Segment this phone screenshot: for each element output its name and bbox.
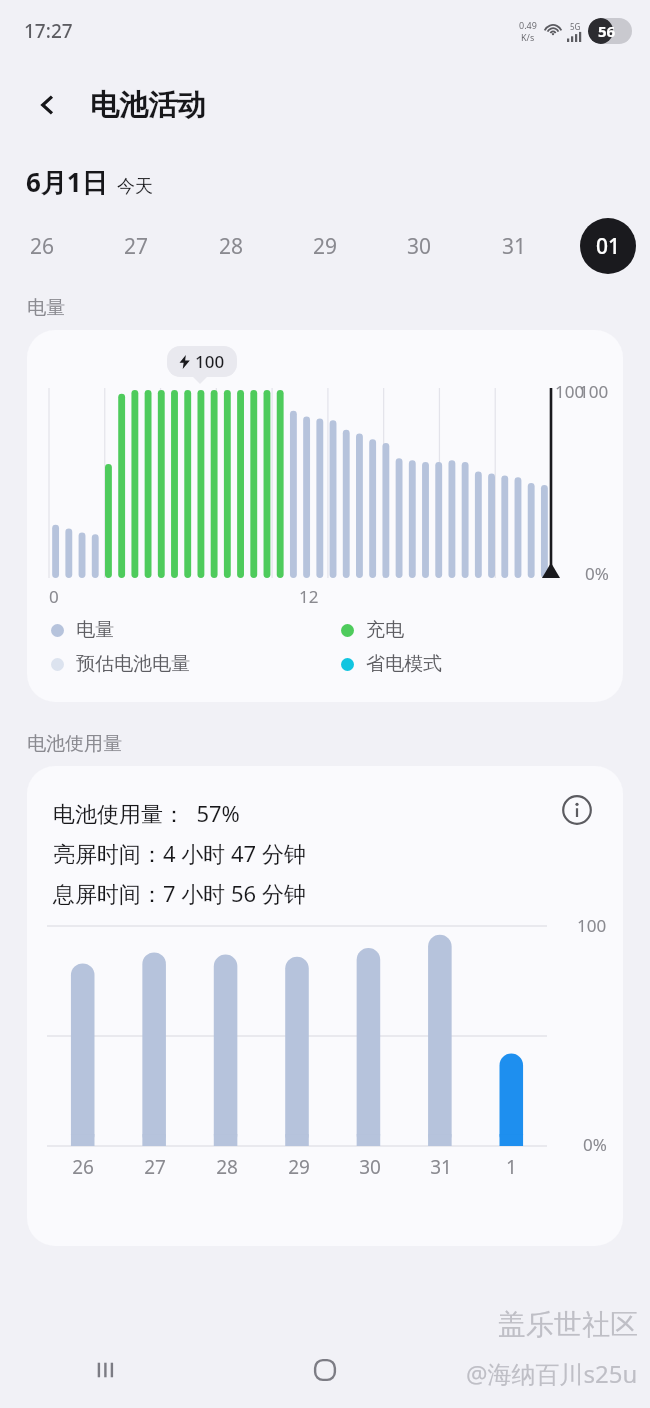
staticText: 100 xyxy=(195,350,225,373)
button[interactable]: 26 xyxy=(14,218,70,274)
staticText: 6月1日 xyxy=(26,164,108,200)
button[interactable]: 最近任务 xyxy=(0,1357,216,1383)
button[interactable]: 返回 xyxy=(20,77,76,133)
staticText: 27 xyxy=(144,1154,166,1180)
button[interactable]: 29 xyxy=(297,218,353,274)
staticText: 100 xyxy=(555,380,585,403)
staticText: 预估电池电量 xyxy=(76,652,190,676)
staticText: 今天 xyxy=(117,175,153,198)
staticText: 26 xyxy=(72,1154,94,1180)
button[interactable]: 31 xyxy=(486,218,542,274)
staticText: 29 xyxy=(313,232,338,261)
staticText: 31 xyxy=(502,232,527,261)
staticText: K/s xyxy=(521,31,535,43)
staticText: 29 xyxy=(288,1154,310,1180)
staticText: 电池使用量 xyxy=(27,732,122,756)
staticText: 电量 xyxy=(27,296,65,320)
staticText: 31 xyxy=(430,1154,452,1180)
staticText: 100 xyxy=(577,914,607,937)
staticText: 息屏时间：7 小时 56 分钟 xyxy=(53,878,306,908)
staticText: 0% xyxy=(585,562,609,585)
staticText: @海纳百川s25u xyxy=(466,1357,638,1390)
staticText: 亮屏时间：4 小时 47 分钟 xyxy=(53,838,306,868)
staticText: 30 xyxy=(359,1154,381,1180)
staticText: 盖乐世社区 xyxy=(498,1307,638,1342)
staticText: 0.49 xyxy=(519,19,537,31)
button[interactable]: 01 xyxy=(580,218,636,274)
button[interactable]: 27 xyxy=(108,218,164,274)
staticText: 28 xyxy=(216,1154,238,1180)
staticText: 电池使用量： 57% xyxy=(53,798,240,828)
staticText: 17:27 xyxy=(24,18,73,44)
button[interactable]: 28 xyxy=(203,218,259,274)
button[interactable]: 100 xyxy=(27,330,623,702)
staticText: 电量 xyxy=(76,618,114,642)
staticText: 12 xyxy=(299,585,319,608)
staticText: 26 xyxy=(30,232,55,261)
button[interactable]: 30 xyxy=(391,218,447,274)
button[interactable]: 主屏幕 xyxy=(216,1357,433,1383)
button[interactable]: 信息 xyxy=(553,786,601,834)
staticText: 充电 xyxy=(366,618,404,642)
staticText: 1 xyxy=(506,1154,517,1180)
button[interactable]: 电池使用量： 57% xyxy=(27,766,623,1246)
staticText: 01 xyxy=(596,232,621,261)
staticText: 5G xyxy=(570,21,581,32)
staticText: 30 xyxy=(407,232,432,261)
staticText: 电池活动 xyxy=(90,87,206,124)
staticText: 100 xyxy=(579,380,609,403)
staticText: 0 xyxy=(49,585,59,608)
staticText: 省电模式 xyxy=(366,652,442,676)
staticText: 27 xyxy=(124,232,149,261)
staticText: 0% xyxy=(583,1133,607,1156)
staticText: 28 xyxy=(219,232,244,261)
staticText: 56 xyxy=(598,21,616,41)
